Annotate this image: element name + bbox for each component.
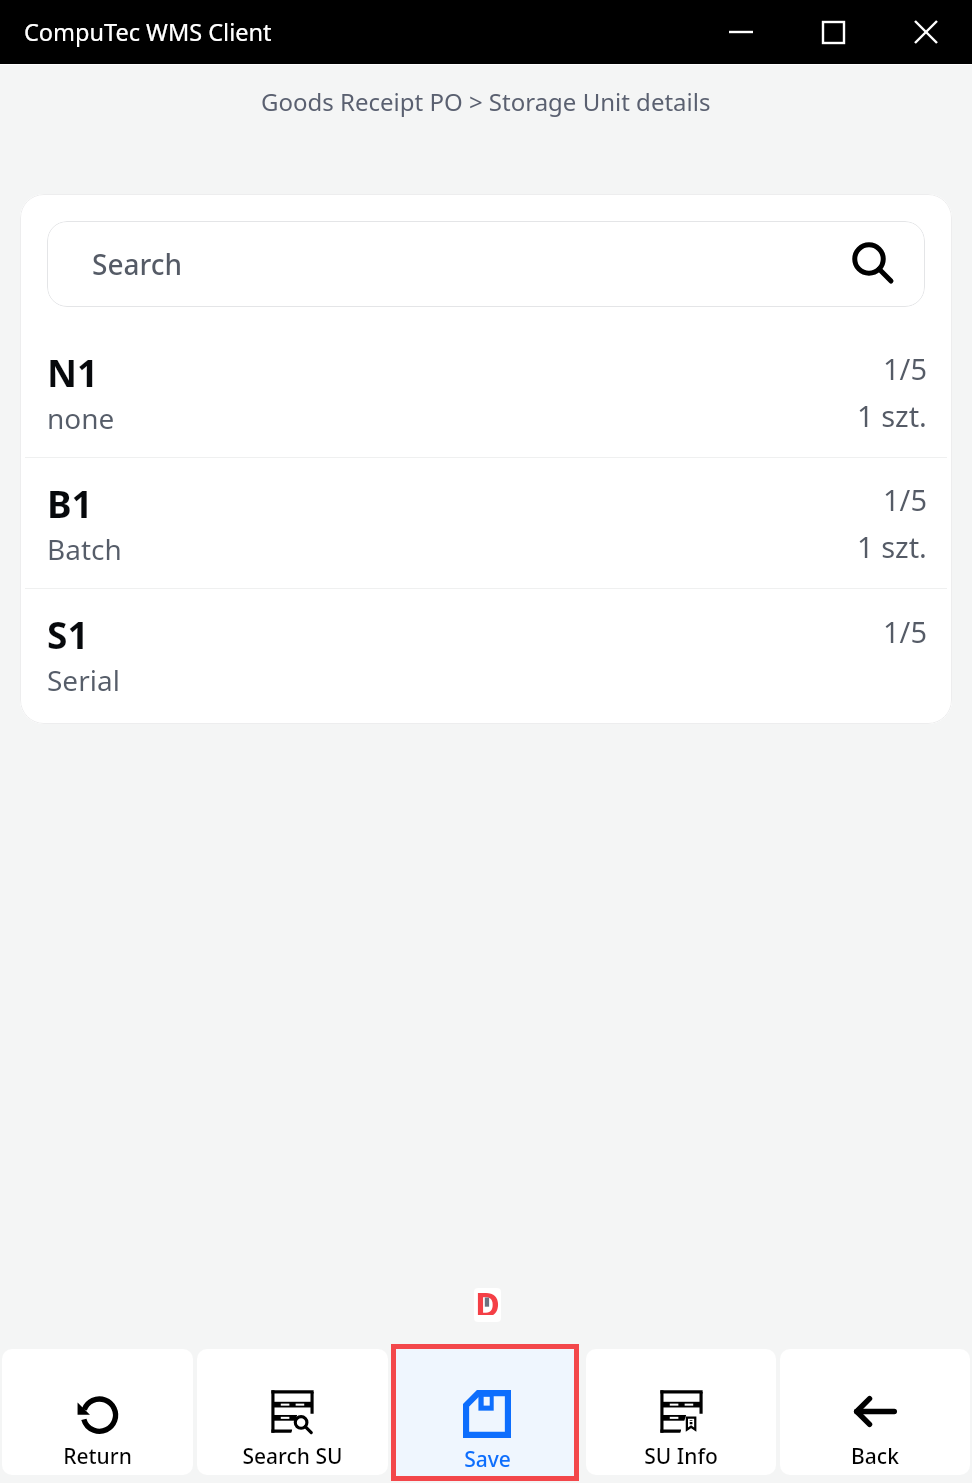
button[interactable]: S1: [20, 589, 952, 719]
staticText: SU Info: [644, 1442, 718, 1471]
button[interactable]: Maximize: [787, 0, 879, 64]
button[interactable]: Back: [780, 1349, 970, 1475]
staticText: Goods Receipt PO > Storage Unit details: [261, 85, 711, 118]
button[interactable]: Search SU: [197, 1349, 388, 1475]
staticText: 1 szt.: [857, 396, 927, 435]
staticText: Batch: [47, 530, 122, 568]
button[interactable]: Search: [47, 221, 925, 307]
staticText: none: [47, 399, 115, 437]
staticText: Save: [464, 1445, 511, 1474]
staticText: B1: [47, 478, 93, 528]
button[interactable]: B1: [20, 458, 952, 588]
staticText: CompuTec WMS Client: [24, 16, 272, 48]
staticText: 1/5: [883, 480, 927, 519]
button[interactable]: SU Info: [586, 1349, 776, 1475]
staticText: Search SU: [242, 1442, 343, 1471]
button[interactable]: Save: [391, 1344, 579, 1481]
staticText: 1/5: [883, 349, 927, 388]
button[interactable]: Return: [2, 1349, 193, 1475]
staticText: 1 szt.: [857, 527, 927, 566]
staticText: N1: [47, 347, 99, 397]
staticText: Return: [63, 1442, 132, 1471]
staticText: D: [475, 1288, 500, 1315]
staticText: Serial: [47, 661, 120, 699]
staticText: S1: [47, 609, 89, 659]
staticText: 1/5: [883, 612, 927, 651]
button[interactable]: Search: [846, 237, 900, 291]
button[interactable]: Close: [879, 0, 972, 64]
button[interactable]: N1: [20, 327, 952, 457]
button[interactable]: Minimize: [695, 0, 787, 64]
staticText: Back: [851, 1442, 899, 1471]
staticText: Search: [92, 245, 183, 283]
